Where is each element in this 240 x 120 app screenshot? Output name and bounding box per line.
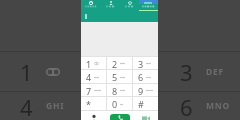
staticText: 7 <box>86 85 92 97</box>
staticText: 1 <box>86 58 92 70</box>
button[interactable]: 3 <box>160 52 240 91</box>
staticText: 5 <box>112 71 118 83</box>
button[interactable]: 5 <box>107 70 132 84</box>
button[interactable]: 7 <box>81 84 106 97</box>
button[interactable]: # <box>133 97 158 111</box>
button[interactable]: 5 <box>80 92 160 120</box>
button[interactable]: Contacts <box>101 0 120 12</box>
button[interactable]: 2 <box>107 57 132 70</box>
button[interactable]: 9 <box>133 84 158 97</box>
button[interactable]: 1 <box>81 57 106 70</box>
button[interactable]: Call <box>110 114 130 120</box>
staticText: # <box>138 98 144 110</box>
staticText: MNO <box>206 100 231 112</box>
staticText: 3 <box>138 58 144 70</box>
staticText: 2 <box>112 58 118 70</box>
button[interactable]: Add contact <box>81 111 106 120</box>
staticText: 8 <box>112 85 118 97</box>
button[interactable]: 3 <box>133 57 158 70</box>
staticText: 0 <box>112 98 118 110</box>
button[interactable]: 6 <box>160 92 240 120</box>
staticText: 1 <box>20 57 33 87</box>
button[interactable]: Video call <box>133 111 158 120</box>
staticText: 9 <box>138 85 144 97</box>
button[interactable]: Favourites <box>120 0 139 12</box>
button[interactable]: Dialpad <box>139 0 158 12</box>
button[interactable]: 6 <box>133 70 158 84</box>
staticText: 6 <box>180 92 193 120</box>
button[interactable]: 4 <box>81 70 106 84</box>
staticText: 2 <box>100 57 113 87</box>
staticText: 5 <box>100 92 113 120</box>
button[interactable]: 8 <box>107 84 132 97</box>
button[interactable]: 4 <box>0 92 80 120</box>
staticText: 3 <box>180 57 193 87</box>
button[interactable]: Recents <box>81 0 101 12</box>
staticText: GHI <box>46 100 65 112</box>
staticText: ABC <box>126 66 146 78</box>
staticText: * <box>86 98 91 110</box>
button[interactable]: 1 <box>0 52 80 91</box>
staticText: JKL <box>126 100 142 112</box>
staticText: DEF <box>206 66 225 78</box>
staticText: 4 <box>20 92 33 120</box>
button[interactable]: 0 <box>107 97 132 111</box>
button[interactable]: 2 <box>80 52 160 91</box>
staticText: 6 <box>138 71 144 83</box>
staticText: 4 <box>86 71 92 83</box>
button[interactable]: * <box>81 97 106 111</box>
